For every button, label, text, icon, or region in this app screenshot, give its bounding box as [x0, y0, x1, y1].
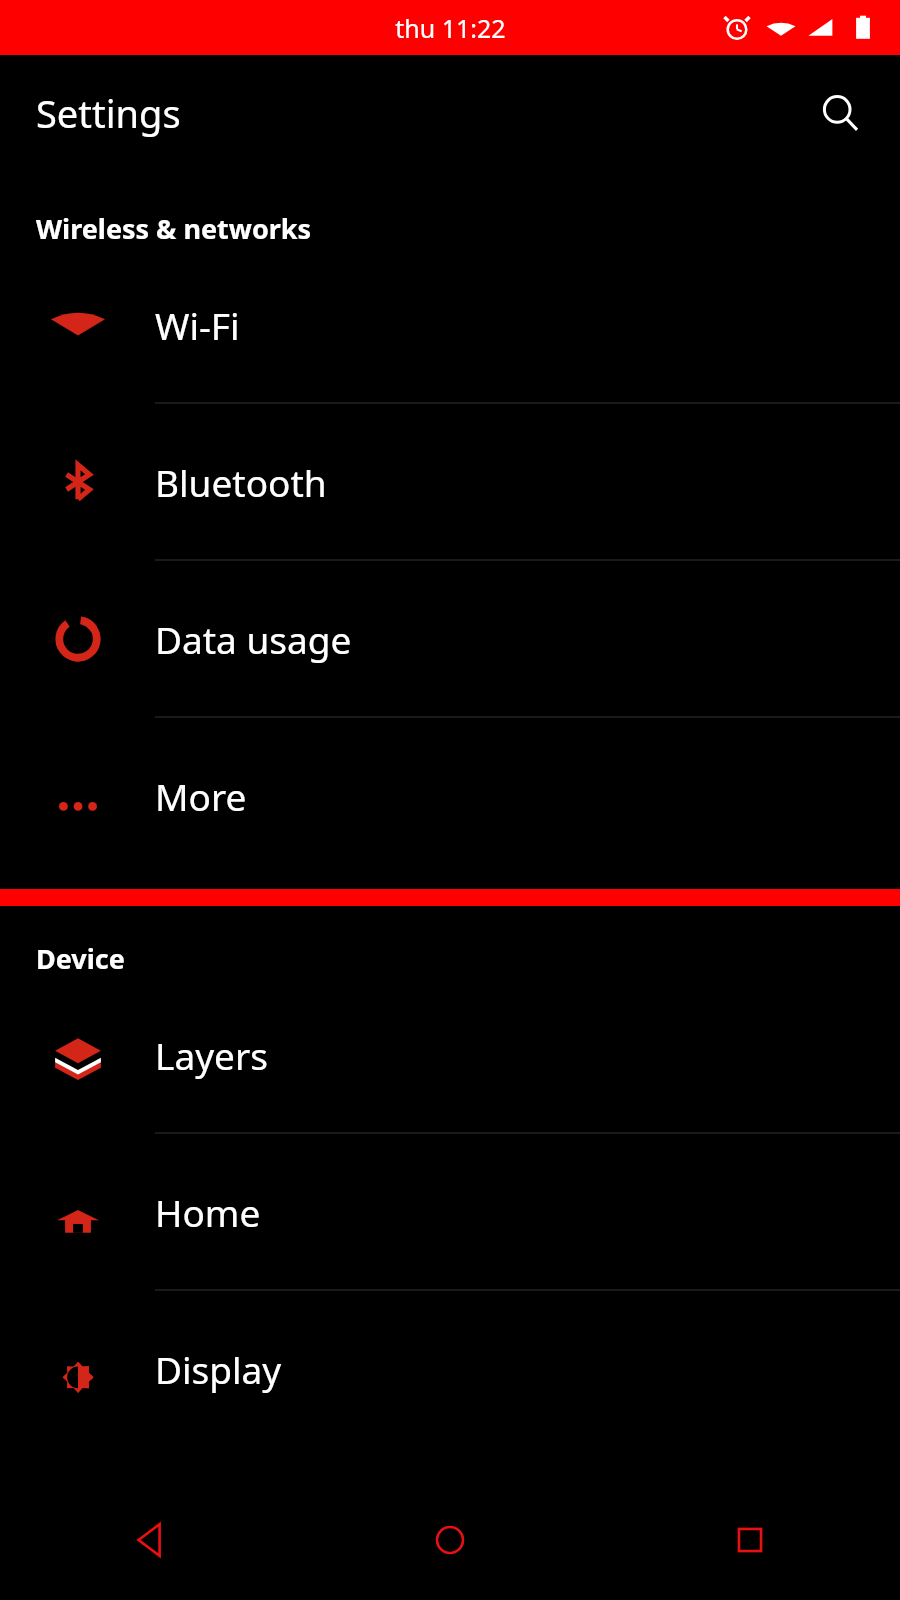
- button[interactable]: Bluetooth: [0, 404, 900, 559]
- button[interactable]: Home: [0, 1134, 900, 1289]
- staticText: thu 11:22: [395, 11, 506, 45]
- button[interactable]: More: [0, 718, 900, 873]
- staticText: Bluetooth: [155, 457, 327, 507]
- staticText: Wi-Fi: [155, 300, 240, 350]
- button[interactable]: Home: [300, 1480, 600, 1600]
- staticText: More: [155, 771, 247, 821]
- staticText: Device: [36, 940, 125, 977]
- button[interactable]: Data usage: [0, 561, 900, 716]
- staticText: Home: [155, 1187, 261, 1237]
- button[interactable]: Back: [0, 1480, 300, 1600]
- staticText: Data usage: [155, 614, 352, 664]
- staticText: Settings: [36, 87, 181, 139]
- button[interactable]: Recent apps: [600, 1480, 900, 1600]
- button[interactable]: Layers: [0, 977, 900, 1132]
- staticText: Layers: [155, 1030, 268, 1080]
- staticText: Display: [155, 1344, 282, 1394]
- staticText: Wireless & networks: [36, 210, 312, 247]
- button[interactable]: Wi-Fi: [0, 247, 900, 402]
- button[interactable]: Display: [0, 1291, 900, 1446]
- button[interactable]: Search: [810, 83, 870, 143]
